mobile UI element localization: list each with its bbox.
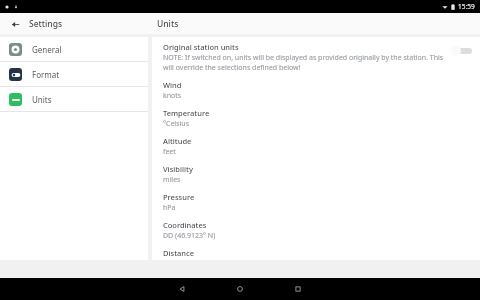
button[interactable]: Coordinates xyxy=(163,213,472,241)
staticText: feet xyxy=(163,147,176,157)
staticText: Temperature xyxy=(163,108,210,118)
staticText: General xyxy=(32,44,62,55)
staticText: Distance xyxy=(163,248,195,258)
button[interactable]: Original station units xyxy=(163,42,472,73)
button[interactable]: Pressure xyxy=(163,185,472,213)
staticText: hPa xyxy=(163,203,176,213)
staticText: Format xyxy=(32,69,60,80)
button[interactable]: Altitude xyxy=(163,129,472,157)
staticText: Wind xyxy=(163,80,182,90)
staticText: miles xyxy=(163,175,181,185)
button[interactable]: Home xyxy=(223,278,257,300)
button[interactable]: General xyxy=(0,37,148,61)
button[interactable]: Format xyxy=(0,62,148,86)
button[interactable]: Back xyxy=(165,278,199,300)
staticText: 15:59 xyxy=(458,2,475,11)
staticText: °Celsius xyxy=(163,119,190,129)
staticText: NOTE: If switched on, units will be disp… xyxy=(163,53,444,73)
staticText: Units xyxy=(157,18,179,30)
button[interactable]: Recent apps xyxy=(281,278,315,300)
button[interactable]: Toggle original station units xyxy=(450,44,472,57)
button[interactable]: Temperature xyxy=(163,101,472,129)
staticText: DD (46.9123° N) xyxy=(163,231,216,241)
staticText: Altitude xyxy=(163,136,192,146)
staticText: Pressure xyxy=(163,192,195,202)
button[interactable]: Visibility xyxy=(163,157,472,185)
staticText: Original station units xyxy=(163,42,239,52)
button[interactable]: Back xyxy=(8,17,22,31)
button[interactable]: Units xyxy=(0,87,148,111)
staticText: Visibility xyxy=(163,164,193,174)
staticText: knots xyxy=(163,91,182,101)
staticText: Coordinates xyxy=(163,220,207,230)
button[interactable]: Distance xyxy=(163,241,472,260)
staticText: Units xyxy=(32,94,52,105)
staticText: Settings xyxy=(29,18,63,30)
button[interactable]: Wind xyxy=(163,73,472,101)
